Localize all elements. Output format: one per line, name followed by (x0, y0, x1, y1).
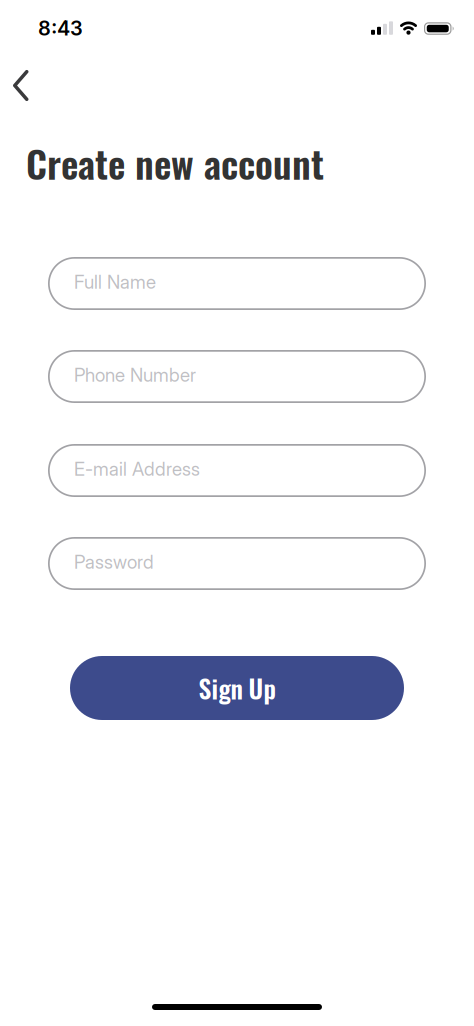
staticText: E-mail Address (74, 458, 200, 480)
button[interactable]: Password (48, 537, 426, 590)
staticText: Sign Up (198, 669, 275, 707)
staticText: Phone Number (74, 364, 196, 386)
staticText: 8:43 (38, 16, 83, 40)
staticText: Full Name (74, 271, 156, 293)
button[interactable]: Full Name (48, 257, 426, 310)
button[interactable]: E-mail Address (48, 444, 426, 497)
button[interactable]: Sign Up (70, 656, 404, 720)
staticText: Create new account (26, 134, 324, 191)
button[interactable]: Back (3, 60, 41, 111)
button[interactable]: Phone Number (48, 350, 426, 403)
staticText: Password (74, 551, 154, 573)
